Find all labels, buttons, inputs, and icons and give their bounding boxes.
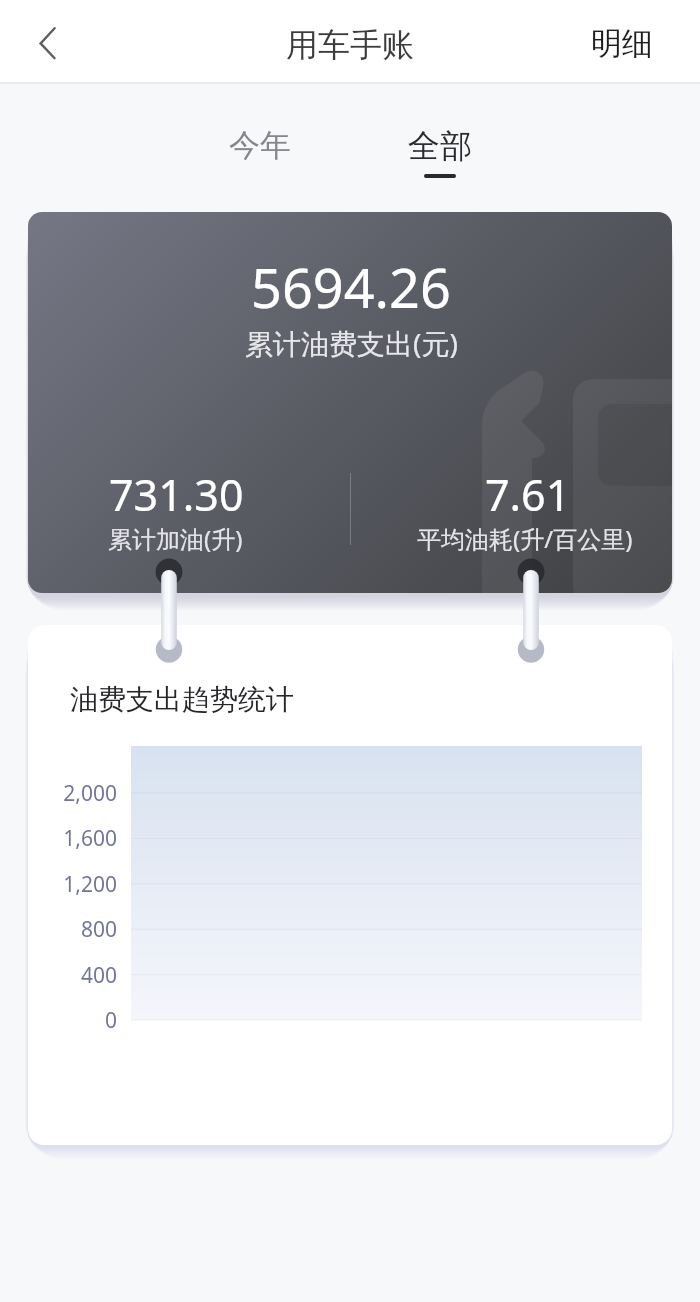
button[interactable]: 5694.26 — [28, 212, 672, 593]
staticText: 5694.26 — [251, 250, 451, 324]
staticText: 累计加油(升) — [108, 522, 243, 555]
button[interactable]: 全部 — [380, 126, 500, 192]
staticText: 平均油耗(升/百公里) — [417, 522, 633, 555]
button[interactable]: 明细 — [568, 0, 700, 84]
staticText: 731.30 — [109, 465, 244, 524]
staticText: 油费支出趋势统计 — [70, 682, 294, 717]
button[interactable]: Back — [0, 0, 84, 84]
staticText: 今年 — [229, 126, 291, 165]
staticText: 1,200 — [63, 870, 117, 899]
staticText: 400 — [80, 961, 117, 990]
staticText: 明细 — [591, 24, 653, 63]
staticText: 全部 — [408, 126, 472, 166]
staticText: 7.61 — [485, 465, 571, 524]
staticText: 2,000 — [63, 779, 117, 808]
staticText: 用车手账 — [286, 25, 414, 65]
button[interactable]: 今年 — [200, 126, 320, 192]
staticText: 800 — [80, 915, 117, 944]
staticText: 累计油费支出(元) — [245, 324, 458, 362]
staticText: 1,600 — [63, 824, 117, 853]
staticText: 0 — [104, 1006, 117, 1035]
